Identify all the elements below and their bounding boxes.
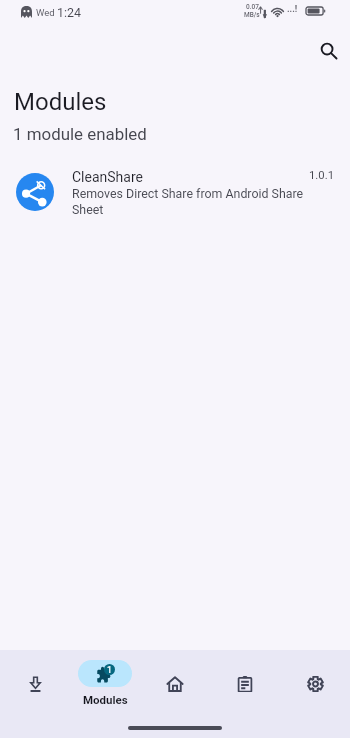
staticText: MB/s (244, 11, 260, 19)
button[interactable]: Search (309, 31, 349, 71)
staticText: 1 module enabled (13, 124, 147, 144)
button[interactable]: Modules (70, 650, 140, 706)
staticText: 1.0.1 (309, 169, 335, 182)
button[interactable]: Home (140, 650, 210, 692)
staticText: Removes Direct Share from Android Share … (72, 186, 312, 217)
staticText: Wed (36, 7, 55, 18)
staticText: CleanShare (72, 169, 143, 185)
button[interactable]: CleanShare (0, 160, 350, 222)
staticText: Modules (14, 88, 107, 116)
staticText: Modules (83, 693, 128, 706)
button[interactable]: Settings (280, 650, 350, 692)
staticText: 1:24 (57, 5, 82, 20)
button[interactable]: Logs (210, 650, 280, 692)
staticText: 0.07 (246, 3, 259, 11)
staticText: 1 (107, 665, 112, 675)
staticText: ...! (287, 4, 298, 15)
button[interactable]: Downloads (0, 650, 70, 692)
